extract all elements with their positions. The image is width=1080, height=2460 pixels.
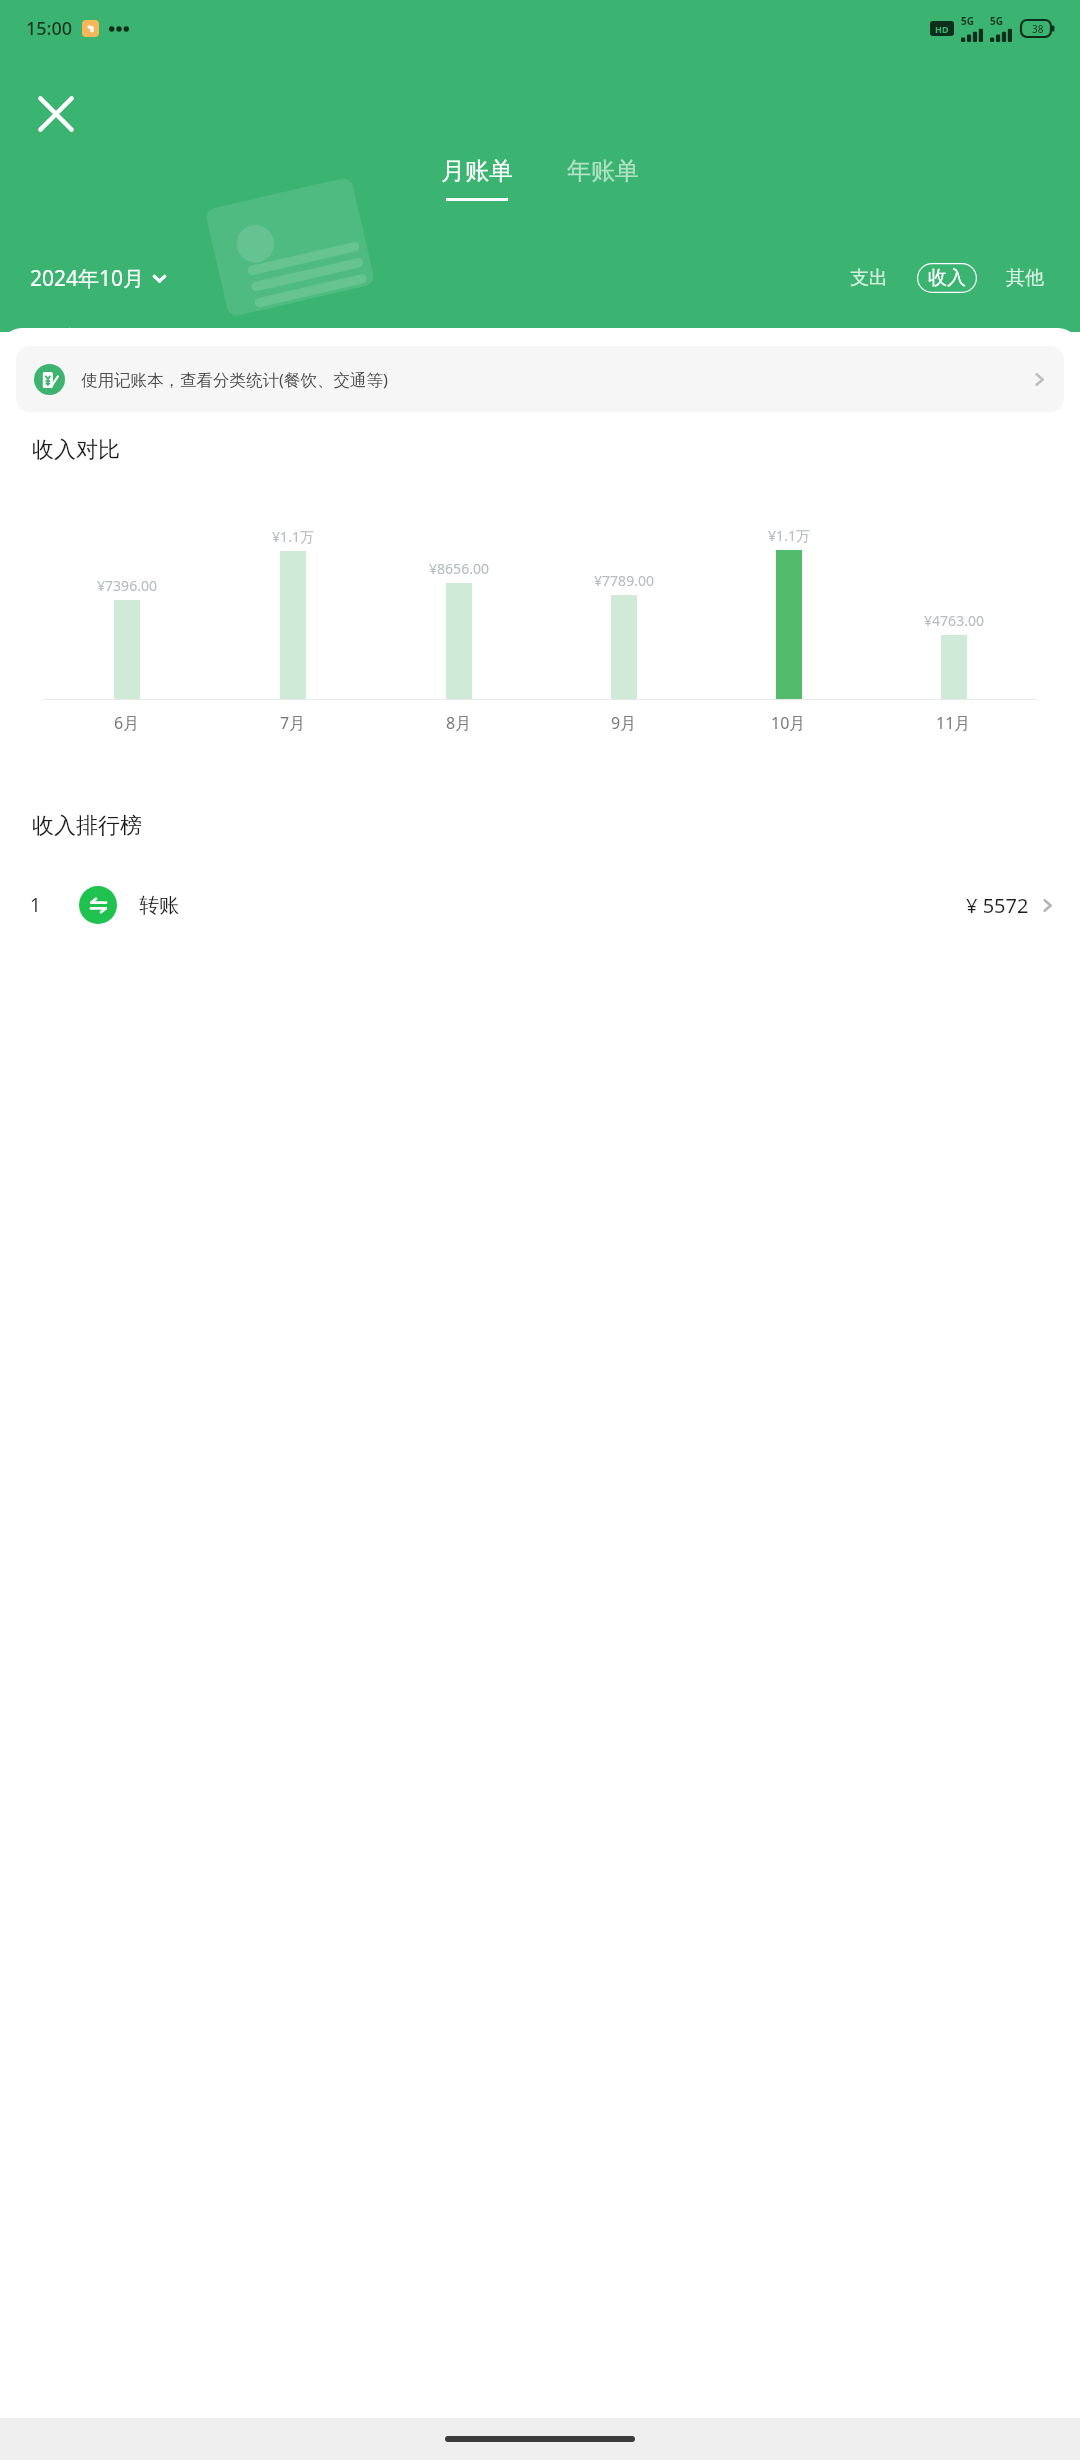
button[interactable]: 2024年10月 (30, 264, 167, 293)
staticText: 共收入523笔，合计 (30, 324, 179, 347)
staticText: 5G (990, 14, 1003, 28)
staticText: 6月 (114, 712, 140, 734)
staticText: 9月 (611, 712, 637, 734)
button[interactable]: 收入 (916, 262, 978, 294)
staticText: ¥8656.00 (429, 559, 489, 578)
staticText: 15:00 (26, 16, 73, 41)
button[interactable]: 支出 (844, 262, 894, 294)
button[interactable]: 使用记账本，查看分类统计(餐饮、交通等) (16, 346, 1064, 412)
staticText: ¥1.1万 (768, 526, 810, 545)
staticText: 11月 (936, 712, 971, 734)
staticText: 收入 (928, 266, 966, 290)
staticText: 收入排行榜 (32, 812, 142, 840)
staticText: 5G (961, 14, 974, 28)
staticText: 年账单 (567, 156, 639, 186)
button[interactable]: 月账单 (431, 152, 523, 205)
staticText: ¥7396.00 (97, 576, 157, 595)
staticText: 转账 (139, 893, 179, 918)
staticText: 收入对比 (32, 436, 120, 464)
staticText: ¥4763.00 (924, 611, 984, 630)
staticText: 使用记账本，查看分类统计(餐饮、交通等) (81, 368, 388, 391)
staticText: 10645.00 (55, 370, 278, 441)
staticText: ¥ 5572 (966, 892, 1029, 919)
staticText: ¥ (28, 381, 49, 430)
staticText: 2024年10月 (30, 264, 145, 293)
staticText: 月账单 (441, 156, 513, 186)
staticText: ¥1.1万 (272, 527, 314, 546)
button[interactable]: 年账单 (557, 152, 649, 205)
button[interactable]: 1 (0, 868, 1080, 942)
staticText: 8月 (446, 712, 472, 734)
staticText: ¥7789.00 (594, 571, 654, 590)
staticText: HD (935, 23, 949, 35)
button[interactable]: 其他 (1000, 262, 1050, 294)
staticText: 7月 (280, 712, 306, 734)
staticText: 1 (30, 892, 41, 918)
staticText: 10月 (771, 712, 806, 734)
button[interactable]: Close (30, 88, 82, 140)
staticText: 38 (1032, 22, 1044, 36)
